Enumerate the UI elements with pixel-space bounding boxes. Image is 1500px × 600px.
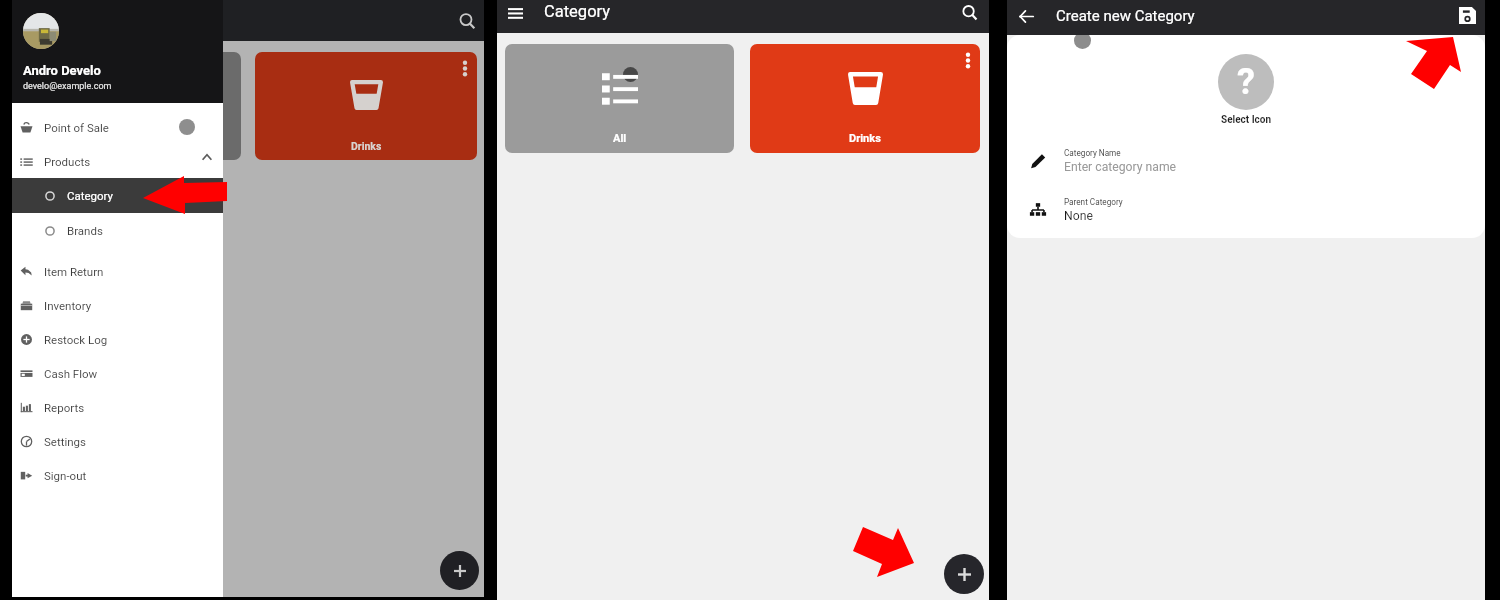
staticText: Sign-out	[44, 469, 87, 482]
button[interactable]: Brands	[12, 213, 223, 248]
staticText: Create new Category	[1056, 7, 1195, 25]
button[interactable]: Settings	[12, 424, 223, 458]
button[interactable]: Select Icon	[1218, 54, 1274, 110]
button[interactable]: Add	[440, 551, 479, 590]
button[interactable]: Parent Category	[1007, 197, 1485, 223]
button[interactable]: Products	[12, 144, 223, 178]
button[interactable]: Point of Sale	[12, 110, 223, 144]
staticText: Restock Log	[44, 333, 108, 346]
button[interactable]: Search	[956, 0, 984, 27]
staticText: Category	[544, 2, 611, 21]
staticText: Category Name	[1064, 148, 1121, 158]
button[interactable]: More options	[456, 59, 474, 77]
staticText: Reports	[44, 401, 85, 414]
button[interactable]: Category	[12, 178, 223, 213]
staticText: Drinks	[849, 132, 881, 145]
staticText: Products	[44, 155, 91, 168]
button[interactable]: Restock Log	[12, 322, 223, 356]
button[interactable]: Reports	[12, 390, 223, 424]
staticText: Drinks	[351, 140, 382, 152]
staticText: Cash Flow	[44, 367, 98, 380]
staticText: Item Return	[44, 265, 104, 278]
staticText: Andro Develo	[23, 63, 101, 78]
staticText: All	[613, 132, 627, 145]
staticText: Enter category name	[1064, 160, 1177, 174]
button[interactable]: Item Return	[12, 254, 223, 288]
button[interactable]: Search	[451, 5, 483, 37]
staticText: Point of Sale	[44, 121, 109, 134]
staticText: Inventory	[44, 299, 92, 312]
button[interactable]: More options	[750, 44, 980, 153]
button[interactable]: More options	[255, 52, 477, 160]
button[interactable]: Menu	[502, 0, 528, 26]
button[interactable]: Category Name	[1007, 148, 1485, 174]
button[interactable]: Save	[1454, 2, 1480, 28]
button[interactable]: Back	[1013, 3, 1039, 29]
staticText: Settings	[44, 435, 86, 448]
staticText: ?	[1237, 61, 1255, 103]
staticText: Brands	[67, 224, 103, 237]
staticText: Category	[67, 189, 114, 202]
staticText: None	[1064, 209, 1093, 223]
button[interactable]: More options	[959, 51, 977, 69]
button[interactable]: Inventory	[12, 288, 223, 322]
staticText: Parent Category	[1064, 197, 1123, 207]
button[interactable]: Cash Flow	[12, 356, 223, 390]
staticText: Select Icon	[1221, 114, 1272, 126]
button[interactable]: All	[505, 44, 734, 153]
button[interactable]: Add category	[944, 554, 984, 594]
staticText: develo@example.com	[23, 81, 112, 92]
button[interactable]: Sign-out	[12, 458, 223, 492]
